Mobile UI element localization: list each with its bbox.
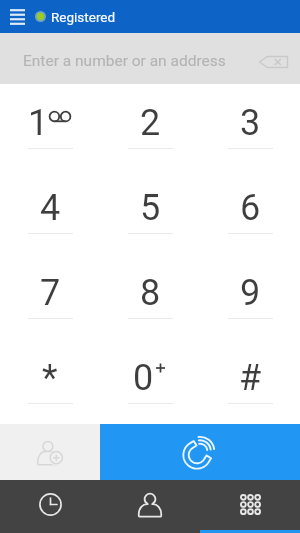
staticText: 7 [40, 272, 61, 314]
button[interactable]: Recents [0, 480, 100, 533]
button[interactable]: 3 [200, 84, 300, 169]
staticText: * [42, 357, 58, 399]
staticText: 6 [240, 187, 261, 229]
button[interactable]: 5 [100, 169, 200, 254]
button[interactable]: 1 [0, 84, 100, 169]
staticText: 9 [240, 272, 261, 314]
button[interactable]: 8 [100, 254, 200, 339]
staticText: 8 [140, 272, 161, 314]
staticText: Registered [51, 9, 116, 25]
staticText: 4 [40, 187, 61, 229]
button[interactable]: 7 [0, 254, 100, 339]
button[interactable]: * [0, 339, 100, 424]
staticText: 5 [140, 187, 161, 229]
staticText: Enter a number or an address [23, 52, 226, 70]
staticText: 1 [28, 102, 49, 144]
button[interactable]: # [200, 339, 300, 424]
button[interactable]: 2 [100, 84, 200, 169]
button[interactable]: 9 [200, 254, 300, 339]
button[interactable]: Contacts [100, 480, 200, 533]
staticText: # [239, 357, 262, 399]
button[interactable]: Add contact [0, 424, 100, 480]
staticText: 3 [240, 102, 261, 144]
button[interactable]: 6 [200, 169, 300, 254]
button[interactable]: Call [100, 424, 300, 480]
button[interactable]: 4 [0, 169, 100, 254]
button[interactable]: Dialpad [200, 480, 300, 533]
button[interactable]: Backspace [247, 33, 300, 84]
button[interactable]: Menu [0, 0, 34, 33]
staticText: 2 [140, 102, 161, 144]
staticText: 0 [133, 357, 154, 399]
button[interactable]: 0 [100, 339, 200, 424]
